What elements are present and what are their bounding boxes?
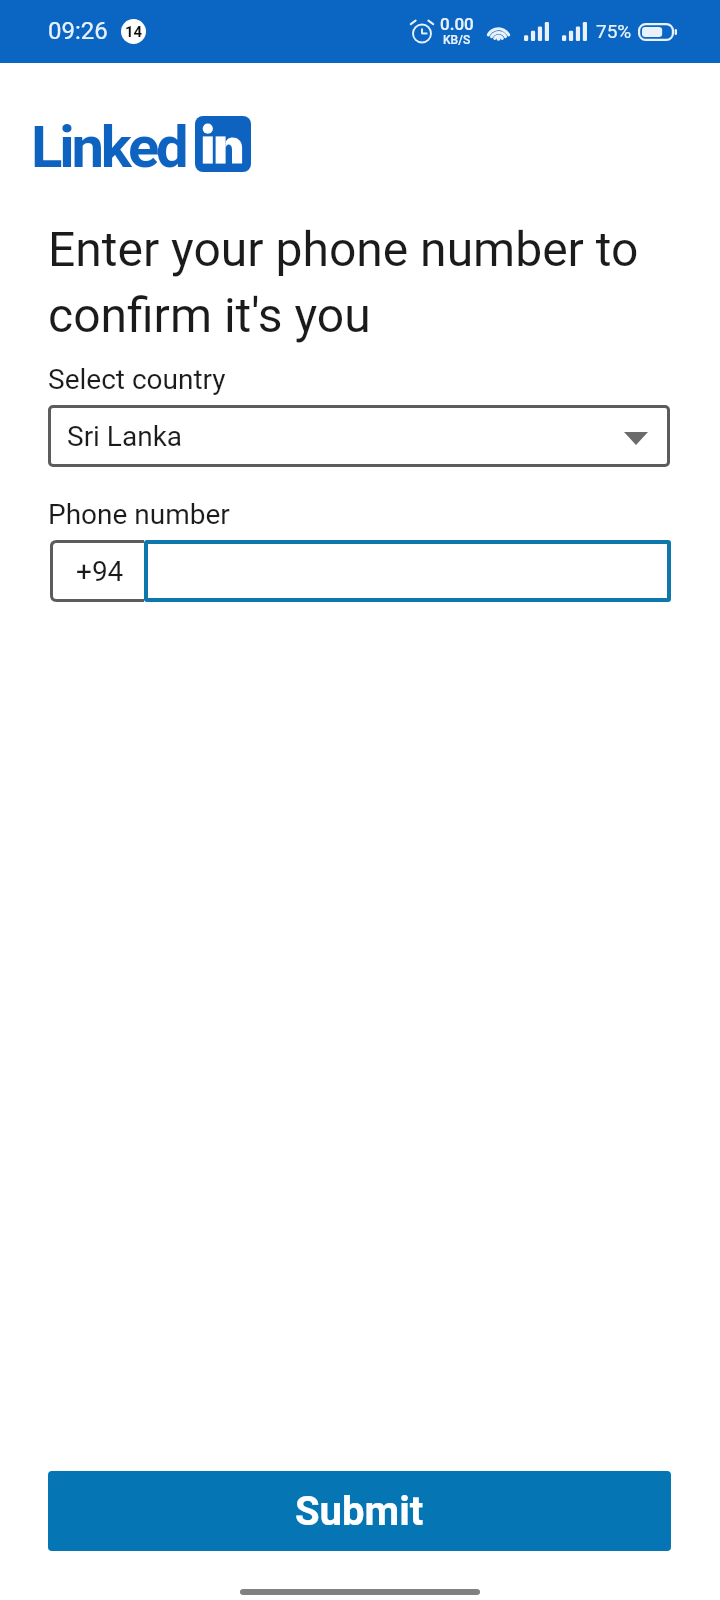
staticText: 0.00 <box>440 16 474 34</box>
button[interactable]: Country calling code +94 <box>50 540 144 602</box>
staticText: Sri Lanka <box>67 420 183 453</box>
other: Home <box>240 1589 480 1595</box>
staticText: Linked <box>31 113 186 169</box>
staticText: KB/S <box>443 34 471 47</box>
staticText: 14 <box>125 23 143 41</box>
staticText: Submit <box>295 1488 424 1535</box>
button[interactable]: Phone number input field <box>144 540 671 602</box>
button[interactable]: Submit <box>48 1471 671 1551</box>
staticText: +94 <box>76 555 124 588</box>
staticText: Phone number <box>48 498 230 531</box>
staticText: 09:26 <box>48 17 108 45</box>
staticText: Enter your phone number to <box>48 214 639 280</box>
staticText: Select country <box>48 363 226 396</box>
button[interactable]: Select country: Sri Lanka <box>48 405 670 467</box>
staticText: 75% <box>596 20 632 42</box>
staticText: confirm it's you <box>48 280 371 346</box>
